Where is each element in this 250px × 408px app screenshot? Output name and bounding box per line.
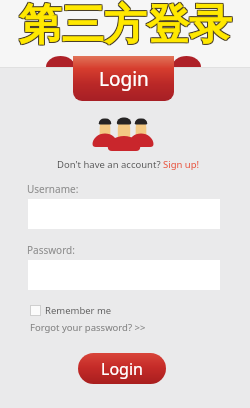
button[interactable]: Sign up! bbox=[163, 158, 200, 171]
staticText: 第三方登录 bbox=[20, 0, 233, 47]
button[interactable]: Login bbox=[78, 353, 166, 384]
staticText: 第三方登录 bbox=[18, 0, 231, 47]
staticText: 第三方登录 bbox=[18, 0, 231, 49]
staticText: 第三方登录 bbox=[19, 0, 232, 49]
staticText: 第三方登录 bbox=[18, 0, 231, 48]
staticText: Don't have an account? bbox=[57, 158, 163, 171]
staticText: Username: bbox=[27, 182, 79, 196]
staticText: Login bbox=[101, 358, 143, 380]
staticText: 第三方登录 bbox=[20, 0, 233, 48]
staticText: Login bbox=[99, 66, 149, 92]
button[interactable]: Remember me bbox=[30, 304, 112, 317]
staticText: Remember me bbox=[45, 304, 112, 317]
button[interactable]: Forgot your password? >> bbox=[30, 321, 146, 334]
staticText: 第三方登录 bbox=[20, 0, 233, 49]
staticText: Password: bbox=[27, 243, 75, 257]
button[interactable]: Login bbox=[46, 56, 201, 101]
staticText: 第三方登录 bbox=[19, 0, 232, 48]
staticText: 第三方登录 bbox=[19, 0, 232, 47]
